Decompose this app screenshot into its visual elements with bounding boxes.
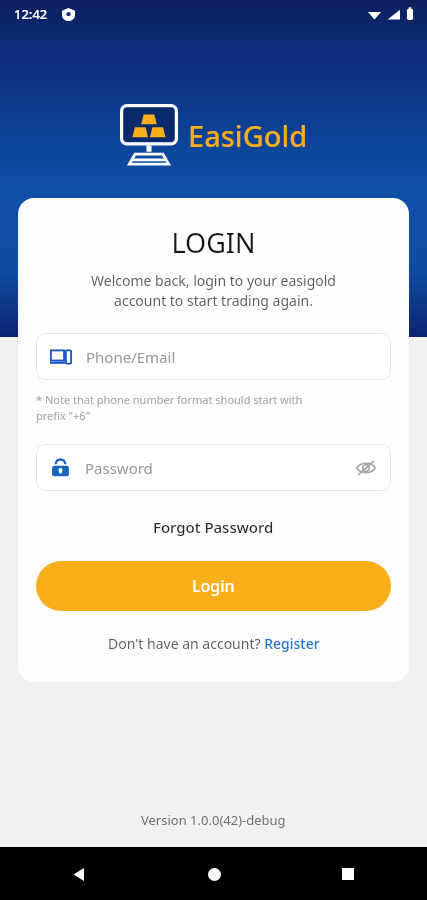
staticText: Password xyxy=(85,458,355,478)
staticText: Welcome back, login to your easigold acc… xyxy=(36,271,391,311)
other: Phone or Email xyxy=(50,346,72,368)
staticText: * Note that phone number format should s… xyxy=(36,392,303,424)
staticText: LOGIN xyxy=(36,224,391,261)
button[interactable]: Forgot Password xyxy=(36,513,391,541)
button[interactable]: Recent apps xyxy=(331,857,365,891)
staticText: 12:42 xyxy=(14,5,48,23)
button[interactable]: Don't have an account? Register xyxy=(36,631,391,656)
button[interactable]: Login xyxy=(36,561,391,611)
staticText: Phone/Email xyxy=(86,347,377,367)
staticText: Version 1.0.0(42)-debug xyxy=(141,811,286,829)
button[interactable]: Phone or Email xyxy=(36,333,391,380)
button[interactable]: Show password xyxy=(355,457,377,479)
staticText: Login xyxy=(192,575,235,597)
button[interactable]: Back xyxy=(62,857,96,891)
staticText: Forgot Password xyxy=(153,517,274,537)
staticText: Don't have an account? Register xyxy=(108,634,320,653)
staticText: EasiGold xyxy=(188,116,308,155)
button[interactable]: Home xyxy=(197,857,231,891)
other: Password xyxy=(50,457,71,478)
button[interactable]: Password xyxy=(36,444,391,491)
